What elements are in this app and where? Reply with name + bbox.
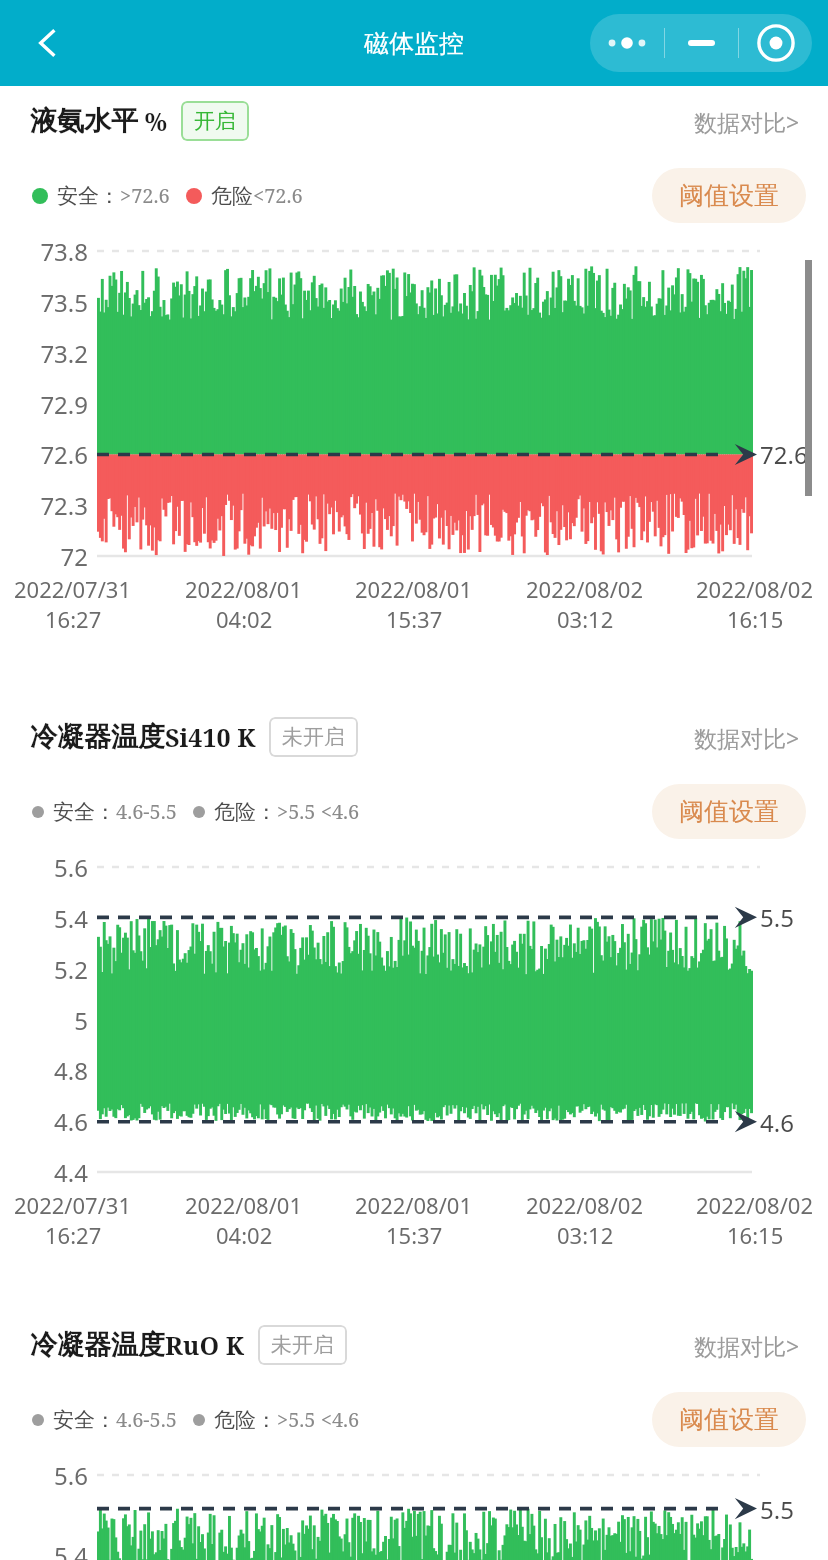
staticText: 阈值设置 (679, 796, 779, 827)
staticText: 72.6 (40, 438, 88, 471)
staticText: >5.5 <4.6 (277, 798, 360, 825)
staticText: 2022/08/01 (185, 1190, 303, 1220)
staticText: 4.6 (760, 1106, 794, 1139)
staticText: 72.6 (760, 438, 808, 471)
staticText: 2022/08/02 (696, 574, 814, 604)
staticText: 5 (74, 1004, 88, 1037)
button[interactable]: Minimize (665, 14, 738, 72)
staticText: 5.4 (54, 902, 88, 935)
staticText: % (138, 104, 168, 138)
button[interactable]: 数据对比> (688, 100, 806, 143)
staticText: 液氨水平 (30, 104, 138, 138)
button[interactable]: 数据对比> (688, 716, 806, 759)
staticText: 2022/08/01 (355, 574, 473, 604)
button[interactable]: 未开启 (269, 717, 358, 757)
staticText: 2022/07/31 (14, 1190, 132, 1220)
staticText: 2022/08/01 (355, 1190, 473, 1220)
staticText: 72 (60, 540, 88, 573)
staticText: 2022/08/02 (696, 1190, 814, 1220)
staticText: 4.4 (54, 1156, 88, 1189)
staticText: 73.5 (40, 286, 88, 319)
staticText: 5.6 (54, 1459, 88, 1492)
staticText: 4.8 (54, 1054, 88, 1087)
staticText: 5.4 (54, 1539, 88, 1560)
staticText: 阈值设置 (679, 180, 779, 211)
staticText: Si410 K (165, 720, 256, 754)
button[interactable]: 未开启 (258, 1325, 347, 1365)
staticText: 4.6 (54, 1105, 88, 1138)
staticText: 16:15 (727, 604, 784, 634)
button[interactable]: 数据对比> (688, 1324, 806, 1367)
staticText: RuO K (165, 1328, 245, 1362)
button[interactable]: 阈值设置 (652, 168, 806, 223)
staticText: 04:02 (216, 1220, 273, 1250)
button[interactable]: Back (16, 11, 80, 75)
staticText: 72.3 (40, 489, 88, 522)
staticText: 2022/08/02 (526, 574, 644, 604)
staticText: 阈值设置 (679, 1404, 779, 1435)
button[interactable]: 开启 (181, 101, 249, 141)
staticText: 03:12 (557, 1220, 614, 1250)
staticText: 15:37 (386, 1220, 443, 1250)
staticText: 2022/08/02 (526, 1190, 644, 1220)
button[interactable]: 阈值设置 (652, 1392, 806, 1447)
staticText: 2022/08/01 (185, 574, 303, 604)
staticText: >72.6 (120, 182, 170, 209)
staticText: 冷凝器温度 (30, 720, 165, 754)
staticText: 16:27 (45, 1220, 102, 1250)
staticText: 04:02 (216, 604, 273, 634)
staticText: 数据对比> (694, 1330, 800, 1361)
staticText: >5.5 <4.6 (277, 1406, 360, 1433)
staticText: 冷凝器温度 (30, 1328, 165, 1362)
staticText: 危险 (211, 183, 253, 209)
staticText: <72.6 (253, 182, 303, 209)
staticText: 安全： (53, 1407, 116, 1433)
staticText: 2022/07/31 (14, 574, 132, 604)
staticText: 15:37 (386, 604, 443, 634)
staticText: 73.8 (40, 235, 88, 268)
staticText: 数据对比> (694, 106, 800, 137)
staticText: 03:12 (557, 604, 614, 634)
staticText: 安全： (53, 799, 116, 825)
staticText: 4.6-5.5 (116, 798, 177, 825)
staticText: 5.2 (54, 953, 88, 986)
staticText: 危险： (214, 1407, 277, 1433)
staticText: 磁体监控 (364, 28, 464, 59)
staticText: 未开启 (282, 724, 345, 750)
button[interactable]: More options (590, 14, 664, 72)
staticText: 安全： (57, 183, 120, 209)
button[interactable]: 阈值设置 (652, 784, 806, 839)
staticText: 5.5 (760, 1493, 794, 1526)
staticText: 数据对比> (694, 722, 800, 753)
button[interactable]: Close (739, 14, 812, 72)
staticText: 73.2 (40, 337, 88, 370)
staticText: 4.6-5.5 (116, 1406, 177, 1433)
staticText: 开启 (194, 108, 236, 134)
staticText: 72.9 (40, 388, 88, 421)
staticText: 危险： (214, 799, 277, 825)
staticText: 16:15 (727, 1220, 784, 1250)
staticText: 16:27 (45, 604, 102, 634)
staticText: 未开启 (271, 1332, 334, 1358)
staticText: 5.5 (760, 901, 794, 934)
staticText: 5.6 (54, 851, 88, 884)
